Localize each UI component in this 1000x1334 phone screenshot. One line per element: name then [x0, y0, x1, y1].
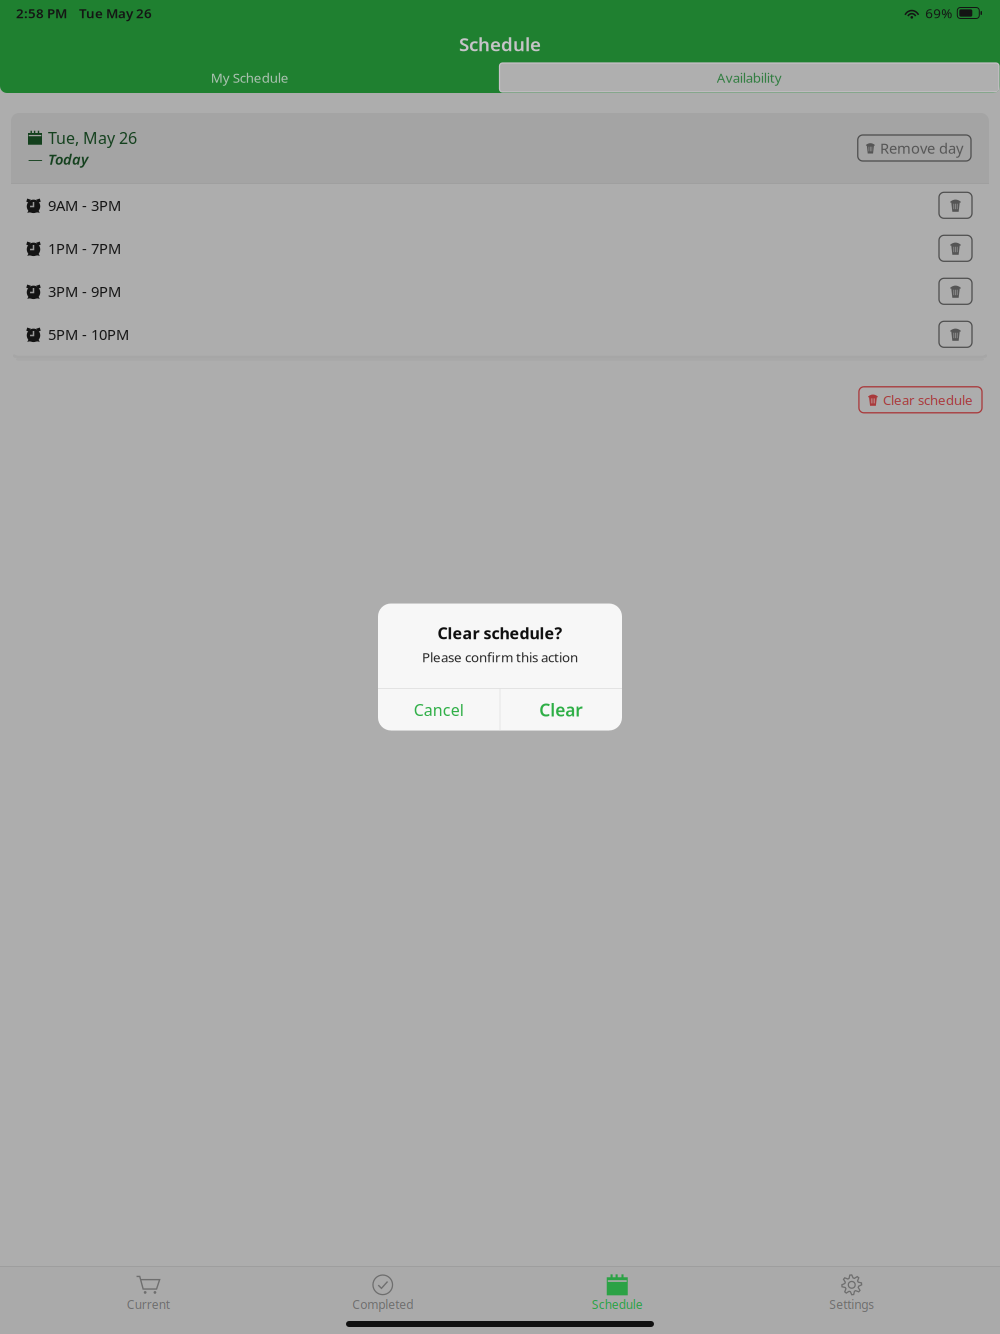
- staticText: Clear schedule: [883, 391, 973, 409]
- staticText: 69%: [925, 4, 952, 22]
- staticText: Today: [48, 149, 88, 169]
- button[interactable]: Clear: [500, 689, 622, 731]
- staticText: 2:58 PM: [16, 4, 67, 22]
- button[interactable]: Current: [31, 1267, 265, 1313]
- button[interactable]: Delete 5PM - 10PM: [939, 321, 972, 347]
- button[interactable]: Settings: [734, 1267, 969, 1313]
- staticText: Remove day: [880, 138, 963, 158]
- staticText: 5PM - 10PM: [48, 325, 129, 344]
- button[interactable]: Delete 1PM - 7PM: [939, 235, 972, 261]
- staticText: Clear: [539, 698, 583, 721]
- staticText: Please confirm this action: [422, 648, 578, 666]
- button[interactable]: Availability: [499, 63, 999, 92]
- staticText: Cancel: [414, 699, 464, 720]
- staticText: 1PM - 7PM: [48, 239, 121, 258]
- staticText: 3PM - 9PM: [48, 282, 121, 301]
- button[interactable]: My Schedule: [0, 63, 499, 92]
- staticText: Tue May 26: [79, 4, 152, 22]
- staticText: Current: [127, 1296, 170, 1312]
- button[interactable]: Clear schedule: [859, 387, 982, 413]
- staticText: My Schedule: [211, 69, 289, 86]
- button[interactable]: Cancel: [378, 689, 500, 731]
- staticText: Schedule: [592, 1296, 643, 1312]
- button[interactable]: Schedule: [500, 1267, 734, 1313]
- button[interactable]: Remove day: [858, 135, 971, 161]
- button[interactable]: Delete 3PM - 9PM: [939, 278, 972, 304]
- staticText: Tue, May 26: [48, 127, 137, 148]
- button[interactable]: Delete 9AM - 3PM: [939, 192, 972, 218]
- staticText: Completed: [352, 1296, 413, 1312]
- staticText: Schedule: [459, 32, 541, 56]
- staticText: Settings: [829, 1296, 874, 1312]
- button[interactable]: Completed: [265, 1267, 500, 1313]
- staticText: Availability: [717, 69, 782, 86]
- staticText: —: [28, 149, 43, 169]
- staticText: Clear schedule?: [437, 622, 562, 644]
- staticText: 9AM - 3PM: [48, 196, 121, 215]
